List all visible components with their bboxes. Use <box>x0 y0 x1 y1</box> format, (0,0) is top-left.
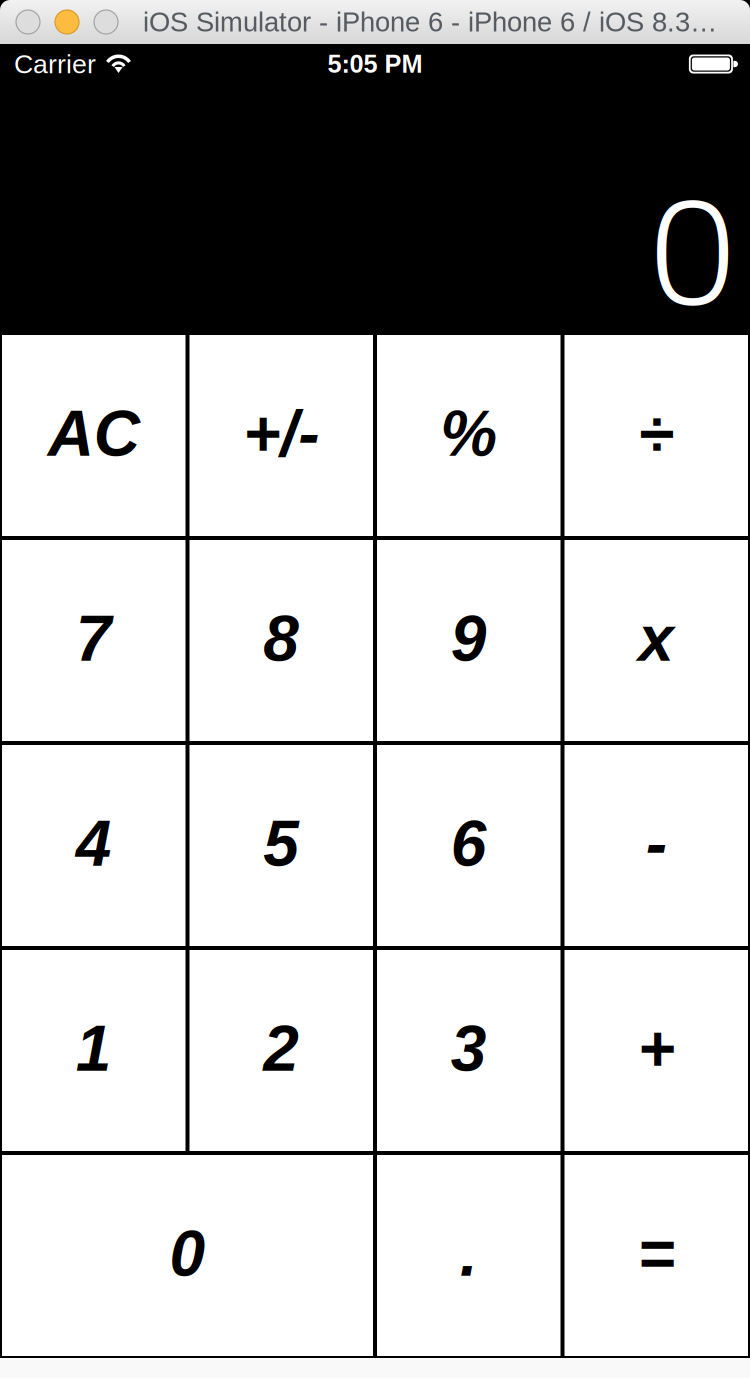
button[interactable]: +/- <box>187 333 375 538</box>
staticText: iOS Simulator - iPhone 6 - iPhone 6 / iO… <box>143 7 717 37</box>
button[interactable]: 6 <box>375 743 562 948</box>
button[interactable]: 0 <box>0 1153 375 1358</box>
staticText: - <box>646 808 667 879</box>
staticText: 1 <box>76 1013 112 1084</box>
staticText: ÷ <box>639 398 674 469</box>
staticText: + <box>638 1013 675 1084</box>
staticText: 9 <box>451 603 487 674</box>
button[interactable]: Minimize window <box>55 10 79 34</box>
staticText: % <box>440 398 497 469</box>
staticText: 5:05 PM <box>327 50 422 78</box>
staticText: 5 <box>263 808 299 879</box>
button[interactable]: % <box>375 333 562 538</box>
button[interactable]: . <box>375 1153 562 1358</box>
button[interactable]: Zoom window <box>94 10 118 34</box>
button[interactable]: = <box>562 1153 750 1358</box>
staticText: 3 <box>451 1013 487 1084</box>
button[interactable]: + <box>562 948 750 1153</box>
staticText: = <box>638 1218 675 1289</box>
staticText: 0 <box>169 1218 205 1289</box>
button[interactable]: 9 <box>375 538 562 743</box>
button[interactable]: 3 <box>375 948 562 1153</box>
button[interactable]: 2 <box>187 948 375 1153</box>
staticText: 8 <box>263 603 299 674</box>
button[interactable]: ÷ <box>562 333 750 538</box>
staticText: 4 <box>76 808 112 879</box>
button[interactable]: AC <box>0 333 187 538</box>
button[interactable]: 7 <box>0 538 187 743</box>
button[interactable]: Close window <box>16 10 40 34</box>
staticText: 6 <box>451 808 487 879</box>
staticText: 2 <box>263 1013 299 1084</box>
staticText: . <box>460 1218 478 1289</box>
staticText: +/- <box>243 398 319 469</box>
button[interactable]: 4 <box>0 743 187 948</box>
button[interactable]: 1 <box>0 948 187 1153</box>
button[interactable]: x <box>562 538 750 743</box>
staticText: 0 <box>650 172 735 335</box>
staticText: 7 <box>76 603 112 674</box>
staticText: Carrier <box>14 49 96 79</box>
staticText: AC <box>48 398 140 469</box>
button[interactable]: 8 <box>187 538 375 743</box>
button[interactable]: - <box>562 743 750 948</box>
button[interactable]: 5 <box>187 743 375 948</box>
staticText: x <box>638 603 674 674</box>
